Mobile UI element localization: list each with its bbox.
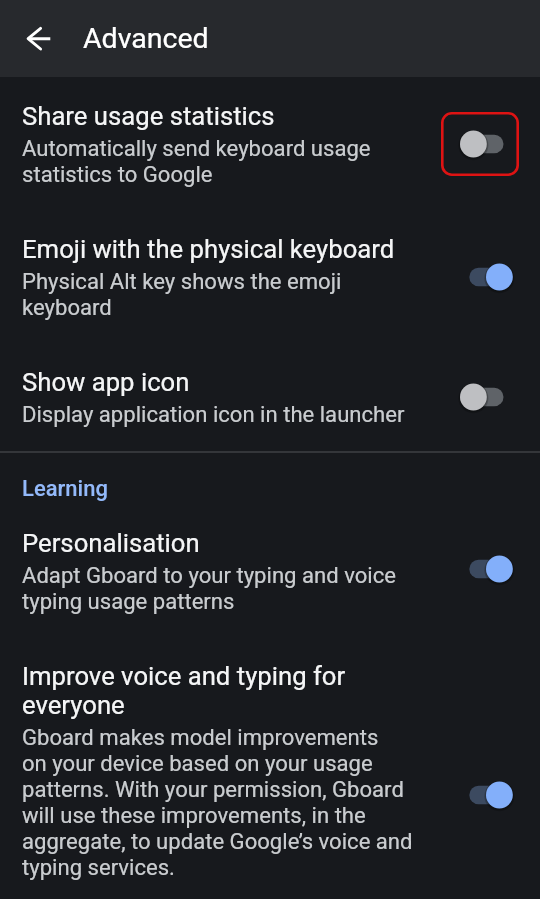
button[interactable]: Toggle off	[441, 365, 519, 429]
staticText: Show app icon	[22, 368, 190, 397]
button[interactable]: Toggle on	[441, 537, 519, 601]
button[interactable]: Back	[7, 11, 63, 67]
staticText: Gboard makes model improvements on your …	[22, 724, 413, 880]
button[interactable]: Personalisation	[0, 501, 540, 632]
button[interactable]: Emoji with the physical keyboard	[0, 205, 540, 338]
button[interactable]: Improve voice and typing for everyone	[0, 632, 540, 898]
button[interactable]: Toggle on	[441, 245, 519, 309]
staticText: Automatically send keyboard usage statis…	[22, 135, 371, 187]
staticText: Advanced	[83, 22, 209, 55]
button[interactable]: Share usage statistics	[0, 77, 540, 205]
button[interactable]: Toggle on	[441, 763, 519, 827]
staticText: Emoji with the physical keyboard	[22, 235, 395, 264]
staticText: Personalisation	[22, 529, 200, 558]
staticText: Share usage statistics	[22, 102, 275, 131]
staticText: Learning	[22, 475, 108, 501]
staticText: Adapt Gboard to your typing and voice ty…	[22, 562, 396, 614]
button[interactable]: Show app icon	[0, 338, 540, 445]
button[interactable]: Toggle off	[441, 112, 519, 176]
staticText: Physical Alt key shows the emoji keyboar…	[22, 268, 342, 320]
staticText: Improve voice and typing for everyone	[22, 662, 346, 720]
staticText: Display application icon in the launcher	[22, 401, 405, 427]
